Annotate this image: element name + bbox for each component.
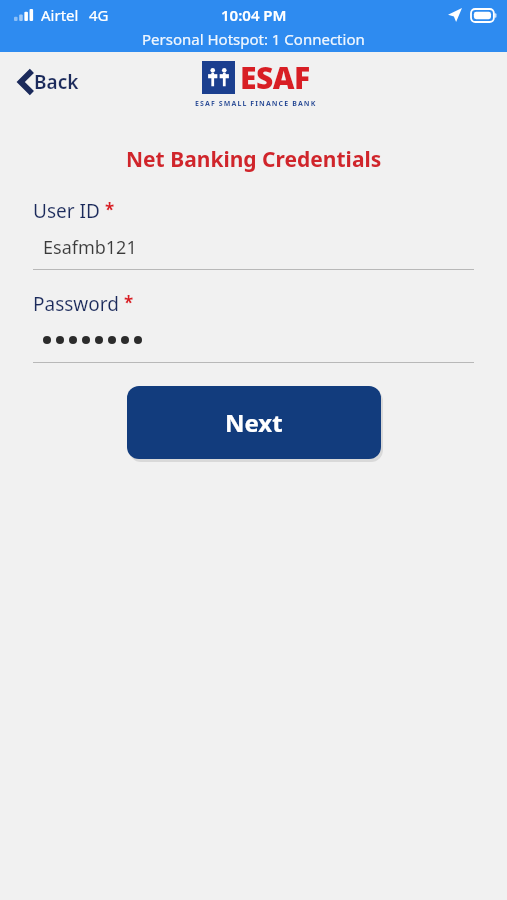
button[interactable]: User ID: [0, 198, 507, 270]
staticText: 4G: [89, 5, 109, 25]
staticText: 10:04 PM: [221, 5, 287, 25]
staticText: User ID: [33, 198, 100, 224]
staticText: Password: [33, 291, 119, 317]
staticText: *: [105, 198, 115, 221]
button[interactable]: Next: [127, 386, 381, 459]
button[interactable]: Back: [14, 63, 83, 101]
staticText: ESAF: [240, 57, 310, 98]
button[interactable]: Password: [0, 291, 507, 363]
staticText: ESAF SMALL FINANCE BANK: [195, 99, 317, 109]
staticText: Net Banking Credentials: [126, 145, 382, 174]
staticText: Back: [34, 69, 79, 95]
staticText: Airtel: [41, 5, 79, 25]
staticText: *: [124, 291, 134, 314]
staticText: Personal Hotspot: 1 Connection: [142, 29, 365, 49]
staticText: Esafmb121: [43, 235, 137, 260]
staticText: Next: [225, 406, 283, 439]
